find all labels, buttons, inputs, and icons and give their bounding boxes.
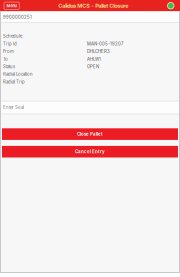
staticText: MAN-005-19207 xyxy=(87,41,123,46)
staticText: Menu xyxy=(7,3,17,8)
staticText: Calidus MCS - Pallet Closure xyxy=(58,2,128,9)
staticText: AHLW1 xyxy=(87,56,101,62)
button[interactable]: Connection status xyxy=(167,2,174,9)
staticText: DHLCHER3 xyxy=(87,49,110,54)
staticText: From xyxy=(3,49,14,54)
staticText: Status xyxy=(3,64,15,69)
button[interactable]: Menu xyxy=(4,2,19,9)
staticText: Trip Id xyxy=(3,41,17,46)
staticText: Close Pallet xyxy=(77,131,103,137)
button[interactable]: Cancel Entry xyxy=(2,146,178,157)
staticText: To xyxy=(3,56,8,62)
staticText: 9900000251 xyxy=(3,15,32,20)
button[interactable]: Close Pallet xyxy=(2,128,178,140)
staticText: Schedule xyxy=(3,34,22,39)
staticText: Enter Seal xyxy=(3,105,24,110)
staticText: OPEN xyxy=(87,64,99,69)
staticText: Cancel Entry xyxy=(75,149,105,154)
staticText: Radial Trip xyxy=(3,79,25,84)
staticText: Radial Location xyxy=(3,72,33,77)
